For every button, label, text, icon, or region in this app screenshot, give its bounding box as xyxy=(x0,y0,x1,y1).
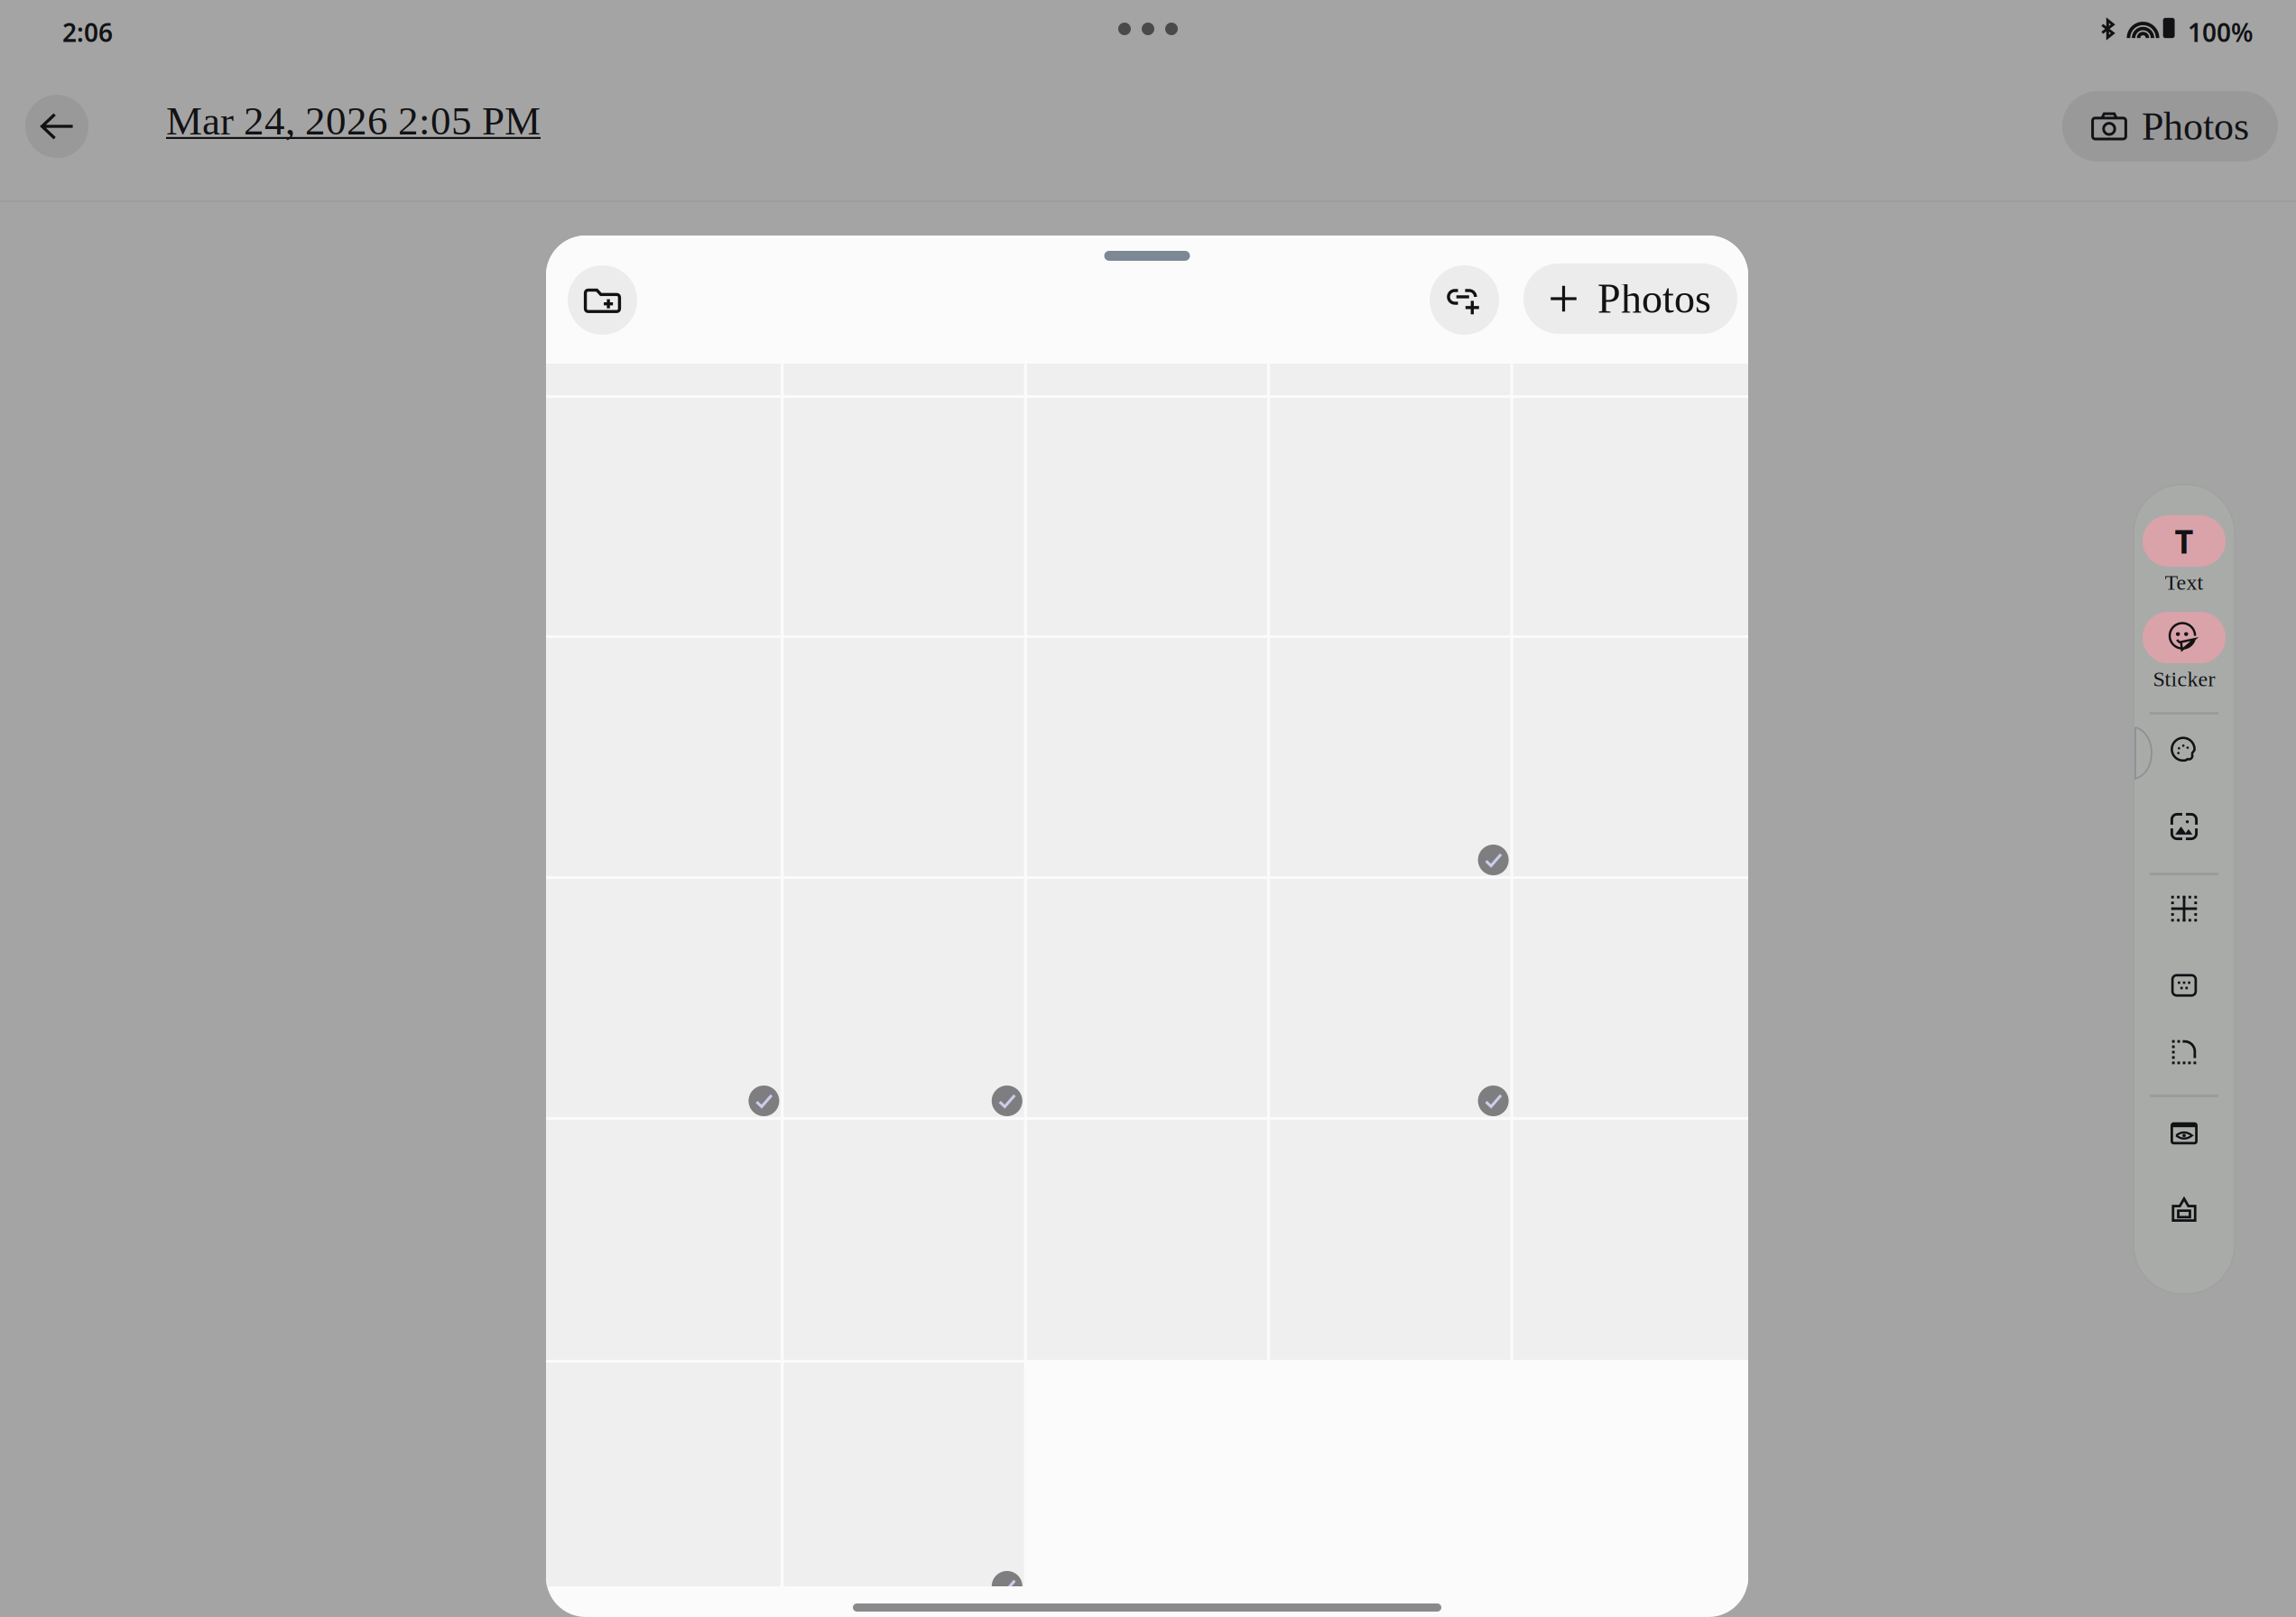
button[interactable]: Corner radius xyxy=(2143,1024,2226,1080)
staticText: Photos xyxy=(1597,276,1711,322)
button[interactable]: Sticker xyxy=(2143,612,2226,691)
staticText: 2:06 xyxy=(62,15,113,49)
button[interactable]: Add link xyxy=(1430,265,1499,335)
button[interactable]: Grid xyxy=(2143,881,2226,937)
button[interactable]: New folder xyxy=(568,265,637,335)
staticText: 100% xyxy=(2188,15,2254,49)
button[interactable]: Back xyxy=(25,95,88,158)
staticText: Photos xyxy=(2142,104,2249,148)
staticText: Mar 24, 2026 2:05 PM xyxy=(166,98,541,143)
button[interactable]: Colors xyxy=(2143,723,2226,779)
staticText: T xyxy=(2175,519,2194,563)
button[interactable]: Preview xyxy=(2143,1105,2226,1161)
button[interactable]: Photos xyxy=(1523,263,1737,334)
button[interactable]: Frame xyxy=(2143,1181,2226,1237)
staticText: Text xyxy=(2165,570,2203,594)
button[interactable]: T xyxy=(2143,515,2226,594)
staticText: Sticker xyxy=(2153,667,2215,691)
button[interactable]: Background image xyxy=(2143,799,2226,855)
button[interactable]: Mar 24, 2026 2:05 PM xyxy=(166,98,541,143)
button[interactable]: Padding xyxy=(2143,957,2226,1013)
button[interactable]: Photos xyxy=(2062,91,2278,162)
